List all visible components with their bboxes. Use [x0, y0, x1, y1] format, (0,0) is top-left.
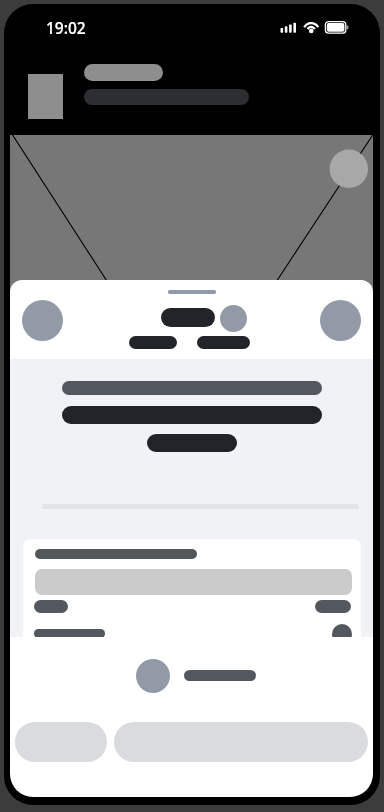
- staticText: 19:02: [46, 17, 86, 38]
- button[interactable]: Secondary action: [15, 722, 107, 762]
- button[interactable]: Item card: [23, 539, 361, 637]
- button[interactable]: Primary action: [114, 722, 368, 762]
